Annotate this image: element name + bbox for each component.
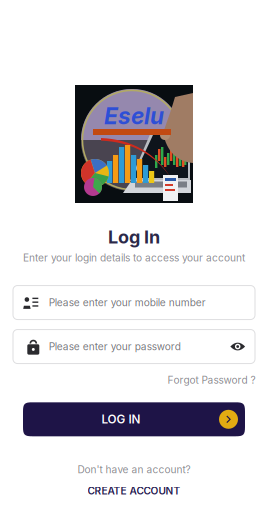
button[interactable]: CREATE ACCOUNT bbox=[87, 485, 180, 497]
staticText: Log In bbox=[108, 226, 160, 248]
button[interactable]: Please enter your mobile number bbox=[12, 285, 255, 320]
button[interactable]: Please enter your password bbox=[12, 329, 255, 364]
button[interactable]: LOG IN bbox=[23, 402, 245, 436]
staticText: CREATE ACCOUNT bbox=[87, 485, 180, 497]
staticText: LOG IN bbox=[101, 412, 140, 426]
button[interactable]: Forgot Password ? bbox=[167, 374, 255, 386]
staticText: Please enter your password bbox=[49, 340, 181, 353]
staticText: Please enter your mobile number bbox=[49, 296, 206, 309]
staticText: Enter your login details to access your … bbox=[23, 252, 245, 264]
staticText: Forgot Password ? bbox=[167, 374, 255, 386]
staticText: Eselu bbox=[104, 102, 164, 130]
staticText: Don't have an account? bbox=[77, 463, 190, 476]
